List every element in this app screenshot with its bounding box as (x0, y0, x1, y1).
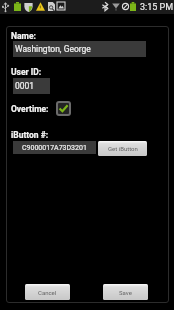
staticText: iButton #: (11, 130, 49, 140)
staticText: 3:15 PM (140, 2, 174, 13)
button[interactable]: Save (103, 284, 148, 300)
staticText: Save (119, 289, 132, 296)
staticText: User ID: (11, 67, 42, 77)
button[interactable]: C9000017A73D3201 (13, 141, 96, 154)
staticText: Get iButton (108, 145, 138, 152)
button[interactable]: Overtime checkbox (56, 101, 71, 116)
button[interactable]: 0001 (13, 78, 50, 94)
staticText: Cancel (38, 289, 57, 296)
button[interactable]: Washington, George (13, 41, 146, 57)
button[interactable]: Cancel (25, 284, 70, 300)
staticText: C9000017A73D3201 (22, 144, 87, 152)
staticText: 0001 (15, 81, 35, 91)
button[interactable]: Get iButton (98, 141, 147, 156)
staticText: Name: (11, 31, 36, 41)
staticText: Overtime: (11, 104, 49, 114)
staticText: Washington, George (15, 44, 91, 54)
